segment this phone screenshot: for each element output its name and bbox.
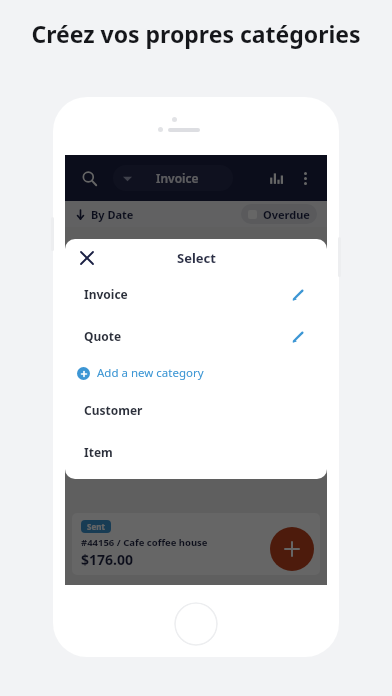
button[interactable]: Edit Quote	[288, 326, 308, 346]
staticText: Customer	[84, 402, 143, 418]
button[interactable]: Close	[73, 244, 101, 272]
button[interactable]: Customer	[73, 393, 319, 427]
button[interactable]: Invoice	[73, 277, 319, 311]
staticText: By Date	[91, 207, 134, 222]
staticText: Select	[177, 249, 216, 267]
staticText: Item	[84, 444, 113, 460]
staticText: Add a new category	[97, 365, 204, 381]
staticText: Créez vos propres catégories	[31, 18, 361, 49]
staticText: $176.00	[81, 550, 133, 568]
staticText: Sent	[87, 521, 105, 532]
button[interactable]: By Date	[75, 207, 134, 222]
staticText: Invoice	[156, 170, 199, 186]
button[interactable]: Overdue	[241, 204, 317, 224]
button[interactable]: Edit Invoice	[288, 284, 308, 304]
staticText: Invoice	[84, 286, 128, 302]
button[interactable]: Invoice	[113, 165, 233, 191]
button[interactable]: Item	[73, 435, 319, 469]
staticText: Quote	[84, 328, 122, 344]
button[interactable]: Add a new category	[65, 353, 327, 393]
staticText: Overdue	[263, 207, 310, 222]
button[interactable]: Search	[75, 164, 103, 192]
button[interactable]: More options	[293, 166, 317, 190]
button[interactable]: Reports	[263, 165, 289, 191]
button[interactable]: Sent	[72, 513, 320, 575]
staticText: #44156 / Cafe coffee house	[81, 536, 208, 549]
button[interactable]: Add invoice	[270, 527, 314, 571]
staticText: 5 Sep	[287, 530, 311, 542]
button[interactable]: Quote	[73, 319, 319, 353]
